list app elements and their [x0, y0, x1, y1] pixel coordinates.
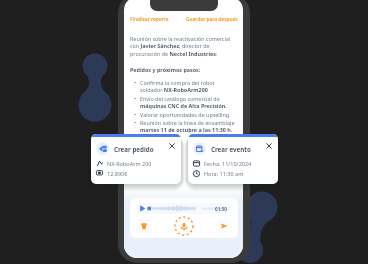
- button[interactable]: Enviar: [216, 218, 232, 234]
- staticText: Valorar oportunidades de upselling.: [140, 111, 231, 118]
- staticText: Crear pedido: [114, 145, 154, 153]
- staticText: •: [134, 119, 137, 126]
- button[interactable]: Finalizar reporte: [130, 16, 169, 23]
- staticText: Hora: 11:30 am: [204, 170, 244, 177]
- button[interactable]: Guardar para después: [186, 16, 238, 23]
- staticText: 12.890€: [107, 170, 128, 177]
- button[interactable]: Cerrar: [169, 143, 175, 149]
- staticText: 01:30: [215, 206, 227, 212]
- button[interactable]: Cerrar: [266, 143, 272, 149]
- staticText: Reunión sobre la reactivación comercial …: [130, 35, 237, 58]
- staticText: Confirma la compra del robot soldador NX…: [140, 79, 237, 94]
- staticText: •: [134, 95, 137, 102]
- staticText: Fecha: 11/10/2024: [204, 160, 252, 167]
- staticText: NX-RoboArm 200: [107, 160, 152, 167]
- staticText: Pedidos y próximos pasos:: [130, 66, 201, 73]
- staticText: Crear evento: [211, 145, 251, 153]
- button[interactable]: Grabar: [174, 216, 194, 236]
- staticText: •: [134, 79, 137, 86]
- button[interactable]: Eliminar: [136, 218, 152, 234]
- staticText: •: [134, 111, 137, 118]
- staticText: Reunión sobre la línea de ensamblaje mar…: [140, 119, 237, 134]
- staticText: Finalizar reporte: [130, 16, 169, 23]
- staticText: Envío del catálogo comercial de máquinas…: [140, 95, 237, 110]
- staticText: Guardar para después: [186, 16, 238, 23]
